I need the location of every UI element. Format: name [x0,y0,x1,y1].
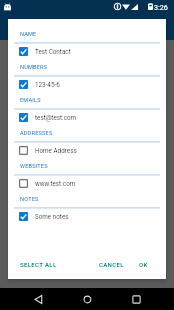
button[interactable]: Home [76,288,98,310]
button[interactable]: Home Address [14,139,160,161]
button[interactable]: test@test.com [14,106,160,128]
staticText: 123-45-6 [35,81,60,88]
staticText: EMAILS [20,97,41,104]
staticText: ADDRESSES [20,130,53,137]
staticText: OK [139,261,148,268]
staticText: test@test.com [35,114,77,121]
staticText: NUMBERS [20,64,48,71]
staticText: WEBSITES [20,163,48,170]
button[interactable]: www.test.com [14,172,160,194]
button[interactable]: CANCEL [93,256,130,273]
button[interactable]: Recents [125,288,147,310]
button[interactable]: Back [27,288,49,310]
button[interactable]: SELECT ALL [14,256,63,273]
staticText: NAME [20,31,37,38]
staticText: www.test.com [35,180,76,187]
button[interactable]: Test Contact [14,40,160,62]
button[interactable]: OK [133,256,154,273]
staticText: Home Address [35,147,77,154]
staticText: 3:26 [154,3,168,11]
button[interactable]: 123-45-6 [14,73,160,95]
staticText: Some notes [35,213,69,220]
staticText: Test Contact [35,48,71,55]
staticText: SELECT ALL [20,261,57,268]
staticText: CANCEL [99,261,124,268]
button[interactable]: Some notes [14,205,160,227]
staticText: NOTES [20,196,39,203]
